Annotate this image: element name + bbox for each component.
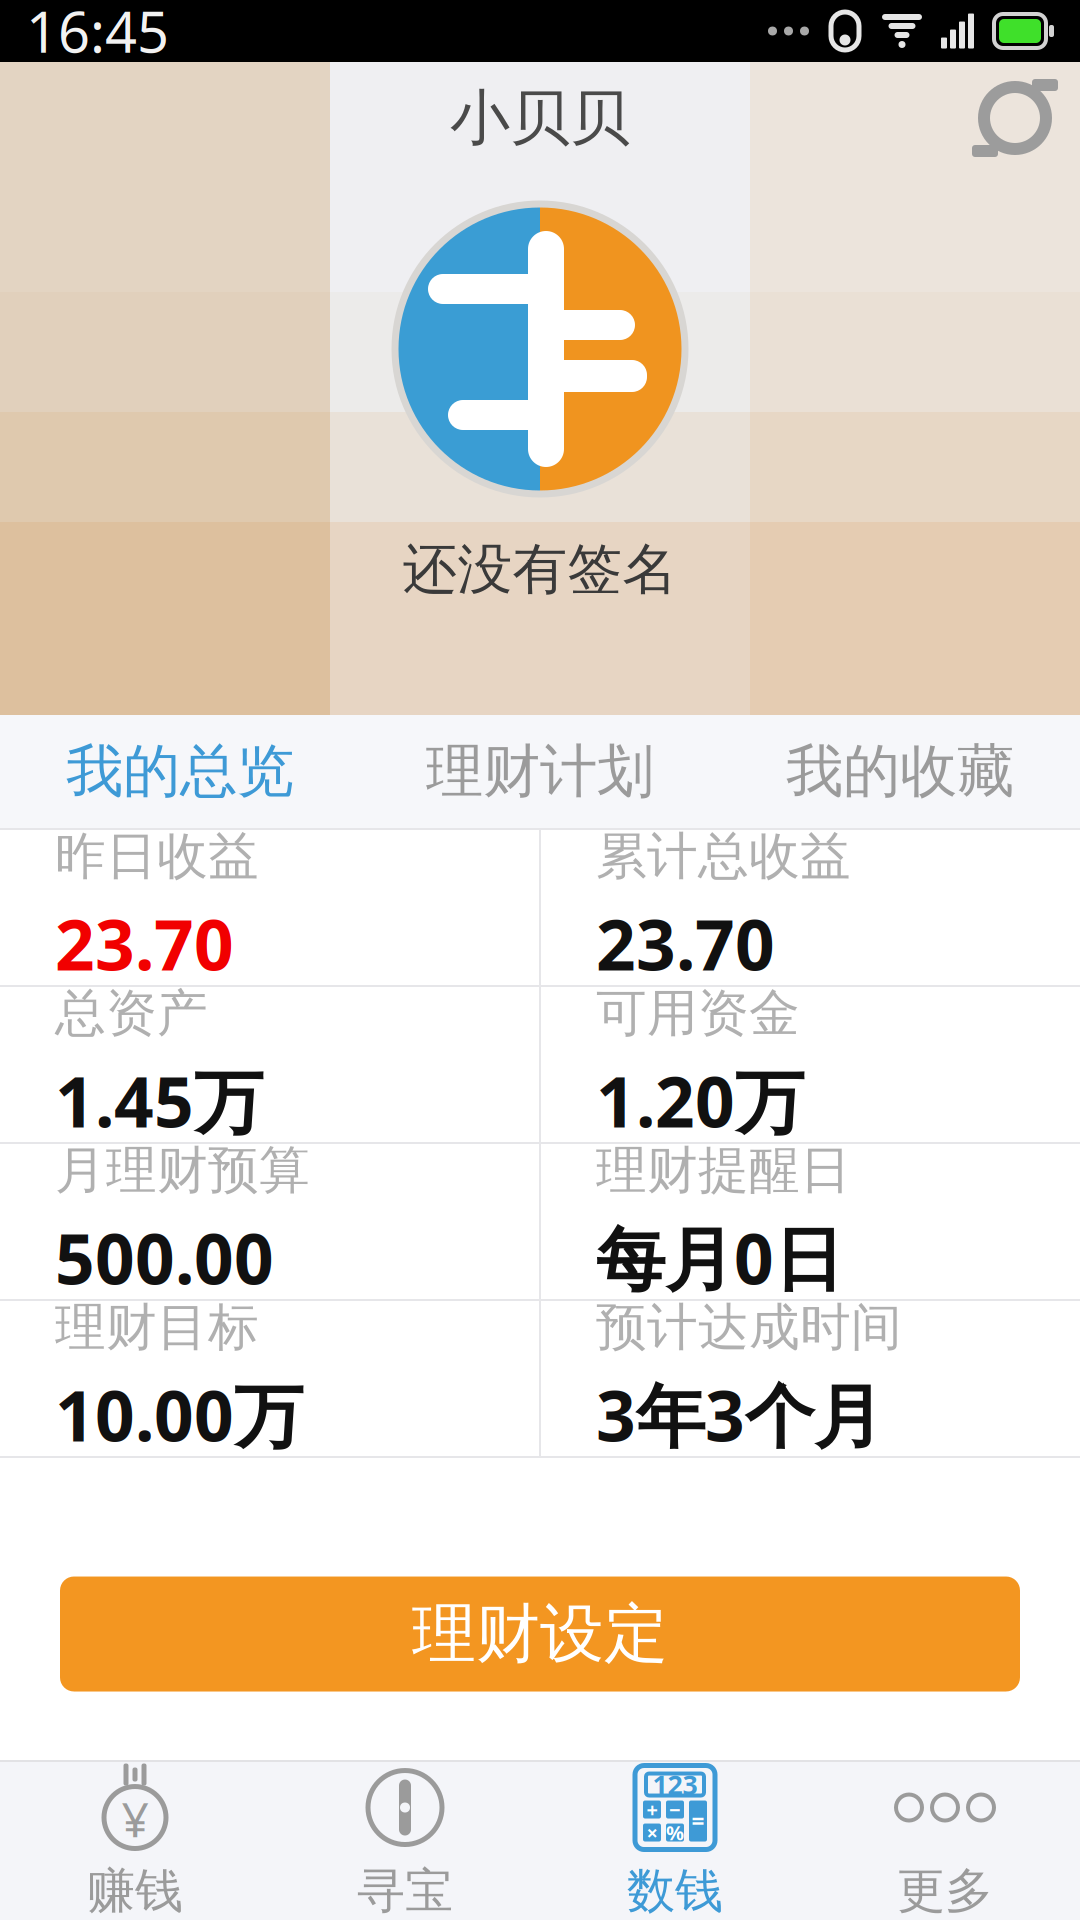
button[interactable]: 理财计划 <box>360 715 720 828</box>
button[interactable]: 我的总览 <box>0 715 360 828</box>
staticText: × <box>646 1819 657 1846</box>
staticText: 1.20万 <box>596 1055 804 1147</box>
staticText: 可用资金 <box>596 982 800 1044</box>
staticText: 500.00 <box>55 1212 274 1304</box>
button[interactable]: 我的收藏 <box>720 715 1080 828</box>
staticText: 我的收藏 <box>786 736 1014 807</box>
button[interactable]: 刷新 <box>950 62 1080 174</box>
staticText: 16:45 <box>26 0 169 68</box>
button[interactable]: 123 <box>540 1762 810 1920</box>
staticText: 3年3个月 <box>596 1369 883 1461</box>
staticText: 理财设定 <box>412 1595 668 1673</box>
staticText: 预计达成时间 <box>596 1296 902 1358</box>
staticText: 每月0日 <box>596 1212 843 1304</box>
staticText: 月理财预算 <box>55 1139 310 1201</box>
staticText: + <box>646 1796 657 1823</box>
staticText: 理财目标 <box>55 1296 259 1358</box>
staticText: 总资产 <box>55 982 208 1044</box>
staticText: 数钱 <box>627 1861 723 1920</box>
button[interactable]: ¥ <box>0 1762 270 1920</box>
staticText: − <box>669 1796 681 1823</box>
staticText: % <box>666 1819 684 1846</box>
button[interactable]: 理财设定 <box>60 1576 1020 1691</box>
button[interactable]: 寻宝 <box>270 1762 540 1920</box>
staticText: 昨日收益 <box>55 825 259 887</box>
staticText: 赚钱 <box>87 1861 183 1920</box>
staticText: ¥ <box>121 1787 148 1850</box>
staticText: 我的总览 <box>66 736 294 807</box>
staticText: 寻宝 <box>357 1861 453 1920</box>
staticText: 理财计划 <box>426 736 654 807</box>
staticText: 1.45万 <box>55 1055 263 1147</box>
button[interactable]: 更多 <box>810 1762 1080 1920</box>
staticText: 123 <box>652 1767 697 1802</box>
staticText: 小贝贝 <box>450 81 630 155</box>
staticText: 10.00万 <box>55 1369 303 1461</box>
staticText: 更多 <box>897 1861 993 1920</box>
staticText: 23.70 <box>596 898 775 990</box>
staticText: 23.70 <box>55 898 234 990</box>
staticText: 理财提醒日 <box>596 1139 851 1201</box>
staticText: 还没有签名 <box>402 536 677 603</box>
staticText: 累计总收益 <box>596 825 851 887</box>
staticText: = <box>691 1806 704 1836</box>
